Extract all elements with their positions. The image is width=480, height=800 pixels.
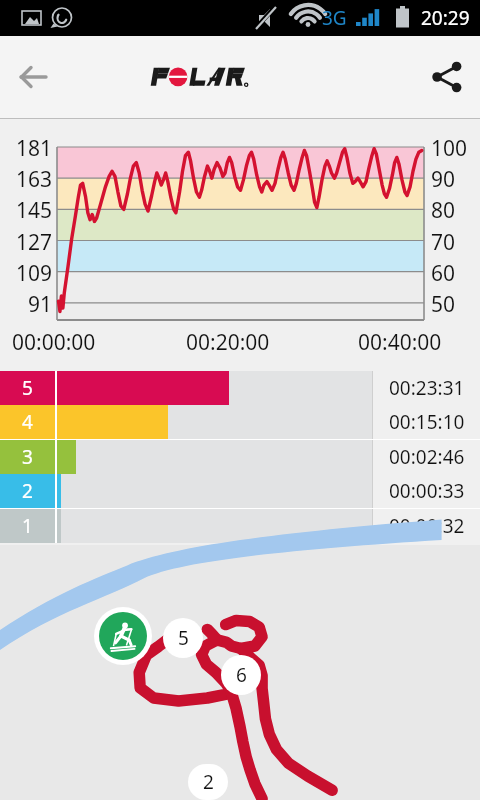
button[interactable]: 5	[163, 618, 203, 658]
staticText: 00:02:46	[389, 444, 465, 470]
staticText: 50	[431, 290, 456, 319]
button[interactable]: Back	[0, 44, 66, 110]
staticText: 4	[22, 409, 33, 435]
button[interactable]: Session start, cross-country skiing	[94, 607, 152, 665]
staticText: 70	[431, 228, 456, 257]
staticText: 60	[431, 259, 456, 288]
staticText: 109	[0, 259, 52, 288]
staticText: 6	[236, 662, 247, 688]
staticText: 20:29	[421, 5, 470, 31]
staticText: 5	[22, 375, 33, 401]
staticText: 00:20:00	[186, 328, 270, 357]
staticText: 90	[431, 165, 456, 194]
staticText: 91	[0, 290, 52, 319]
staticText: 3	[22, 444, 33, 470]
staticText: 2	[203, 769, 214, 795]
button[interactable]: 2	[0, 474, 480, 508]
staticText: 80	[431, 196, 456, 225]
staticText: 3G	[322, 5, 347, 31]
staticText: 00:00:00	[12, 328, 96, 357]
button[interactable]: 1	[0, 509, 480, 543]
staticText: 00:00:33	[389, 478, 465, 504]
staticText: 100	[431, 134, 468, 163]
staticText: 00:40:00	[358, 328, 442, 357]
staticText: 1	[22, 513, 33, 539]
staticText: 00:23:31	[389, 375, 465, 401]
button[interactable]: Share	[414, 44, 480, 110]
staticText: 2	[22, 478, 33, 504]
staticText: 163	[0, 165, 52, 194]
staticText: 00:15:10	[389, 409, 465, 435]
button[interactable]: 3	[0, 440, 480, 474]
button[interactable]: 5	[0, 371, 480, 405]
staticText: 00:00:32	[389, 513, 465, 539]
staticText: 145	[0, 196, 52, 225]
staticText: 5	[178, 625, 189, 651]
staticText: 127	[0, 228, 52, 257]
button[interactable]: 4	[0, 405, 480, 439]
button[interactable]: 5	[0, 545, 480, 800]
button[interactable]: 2	[188, 764, 228, 800]
staticText: 181	[0, 134, 52, 163]
button[interactable]: 6	[221, 655, 261, 695]
